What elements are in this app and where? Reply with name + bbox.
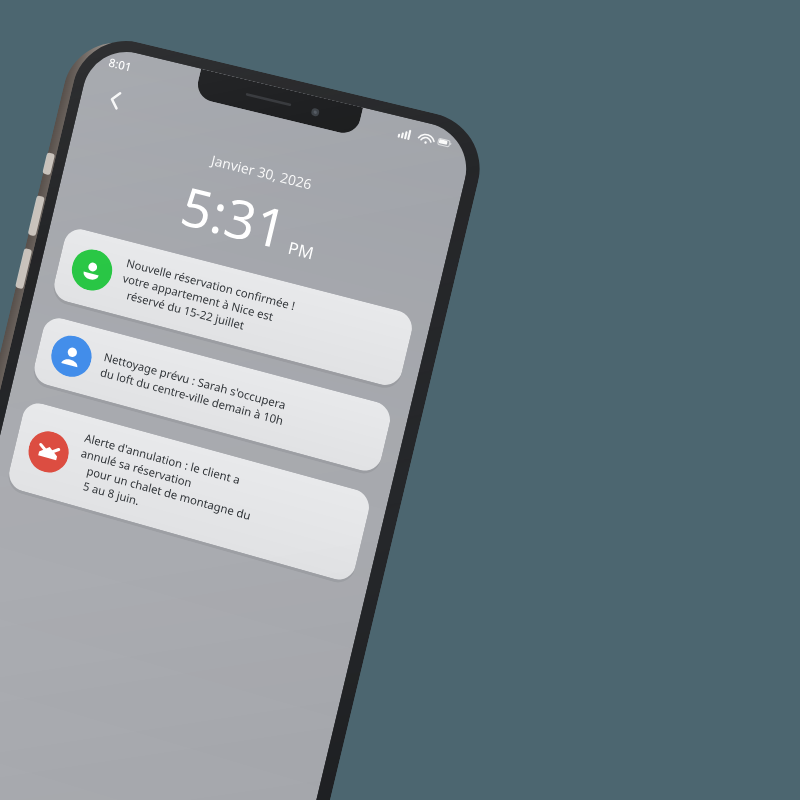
button[interactable]: Alerte d'annulation : le client a xyxy=(6,399,373,584)
staticText: réservé du 15-22 juillet xyxy=(125,288,246,334)
staticText: 5 au 8 juin. xyxy=(81,478,141,509)
button[interactable]: Nettoyage prévu : Sarah s'occupera xyxy=(31,314,394,475)
staticText: Nouvelle réservation confirmée ! xyxy=(125,255,297,314)
staticText: Alerte d'annulation : le client a xyxy=(83,430,242,488)
staticText: PM xyxy=(286,236,316,264)
staticText: 8:01 xyxy=(107,54,133,75)
staticText: du loft du centre-ville demain à 10h xyxy=(99,364,286,429)
button[interactable]: Back xyxy=(92,77,139,124)
staticText: Nettoyage prévu : Sarah s'occupera xyxy=(102,349,287,413)
staticText: Janvier 30, 2026 xyxy=(209,150,314,194)
button[interactable]: Nouvelle réservation confirmée ! xyxy=(51,226,416,389)
staticText: votre appartement à Nice est xyxy=(121,270,276,325)
staticText: 5:31 xyxy=(174,168,295,265)
staticText: pour un chalet de montagne du xyxy=(85,463,253,524)
staticText: annulé sa réservation xyxy=(79,445,194,491)
